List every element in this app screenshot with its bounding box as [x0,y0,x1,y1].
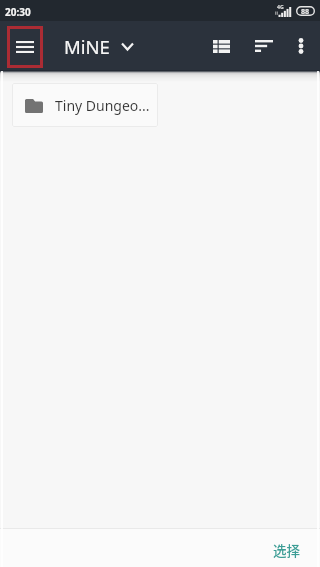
button[interactable]: MiNE [60,24,137,68]
button[interactable]: 选择 [253,529,320,567]
button[interactable]: View list [202,27,240,65]
staticText: 4G [277,3,284,10]
staticText: 选择 [273,540,300,560]
staticText: MiNE [64,34,110,59]
staticText: 88 [301,6,310,16]
button[interactable]: More options [283,24,319,68]
button[interactable]: Navigation menu [7,26,43,68]
button[interactable]: Tiny Dungeo... [12,83,158,127]
button[interactable]: Sort [245,27,283,65]
staticText: Tiny Dungeo... [55,96,150,115]
staticText: 20:30 [5,5,31,19]
